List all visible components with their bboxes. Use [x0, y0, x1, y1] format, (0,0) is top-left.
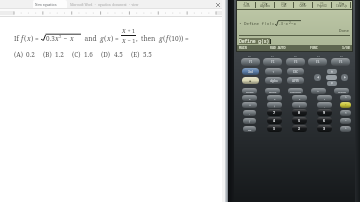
button[interactable]: F1	[241, 58, 260, 66]
button[interactable]: F4▼ Other	[294, 2, 312, 8]
staticText: x	[122, 26, 126, 35]
staticText: ▼	[331, 82, 333, 85]
staticText: F4▼ Other	[299, 2, 307, 8]
button[interactable]: F6▼ Clean Up	[332, 2, 350, 8]
staticText: g	[159, 34, 163, 43]
staticText: ∞	[249, 104, 251, 107]
staticText: 2	[289, 21, 291, 25]
button[interactable]: −	[340, 118, 351, 124]
button[interactable]: 5	[292, 117, 307, 124]
button[interactable]: ^	[340, 95, 351, 101]
button[interactable]: (	[267, 102, 282, 108]
button[interactable]: Right	[341, 74, 348, 81]
button[interactable]: F2	[263, 58, 282, 66]
staticText: 2	[298, 126, 301, 131]
button[interactable]: x	[242, 95, 257, 101]
button[interactable]: (B)	[43, 50, 64, 59]
button[interactable]: ESC	[287, 68, 304, 75]
staticText: (	[163, 34, 166, 43]
staticText: ▲	[331, 70, 333, 73]
button[interactable]: Down	[327, 81, 337, 86]
staticText: F7	[271, 54, 274, 57]
button[interactable]: F5	[331, 58, 350, 66]
button[interactable]: Left	[314, 74, 321, 81]
staticText: −	[345, 119, 347, 123]
button[interactable]: ,	[317, 102, 332, 108]
staticText: RAD AUTO	[270, 46, 286, 50]
button[interactable]: 1	[267, 125, 282, 132]
button[interactable]: HOME	[242, 88, 257, 94]
staticText: 6	[323, 118, 326, 123]
button[interactable]: F1▼ Tools	[238, 2, 255, 8]
button[interactable]: 2	[292, 125, 307, 132]
button[interactable]: F5 PrgmIO	[313, 2, 331, 8]
staticText: ) =	[111, 34, 121, 43]
staticText: F2	[340, 54, 343, 57]
button[interactable]: alpha	[265, 77, 282, 84]
button[interactable]: (C)	[72, 50, 93, 59]
button[interactable]: |	[243, 110, 256, 116]
staticText: 1.2	[55, 50, 64, 59]
button[interactable]: +	[340, 126, 351, 132]
staticText: F5	[339, 60, 343, 64]
staticText: ◆	[249, 79, 252, 82]
staticText: ◀	[317, 76, 319, 79]
staticText: 8	[298, 110, 301, 115]
button[interactable]: ∞	[242, 102, 257, 108]
staticText: sin	[248, 128, 252, 131]
staticText: F3	[294, 60, 298, 64]
button[interactable]: ←	[311, 88, 326, 94]
staticText: F5 PrgmIO	[317, 2, 327, 8]
button[interactable]: 8	[292, 109, 307, 116]
button[interactable]: 9	[317, 109, 332, 116]
staticText: F1	[317, 54, 320, 57]
button[interactable]: CLEAR	[334, 88, 349, 94]
button[interactable]: ×	[340, 110, 351, 116]
button[interactable]: )	[292, 102, 307, 108]
staticText: ^	[345, 96, 347, 100]
button[interactable]: sin	[243, 126, 256, 132]
staticText: 3	[323, 126, 326, 131]
button[interactable]: New equation	[33, 0, 67, 9]
button[interactable]: F2▼ Algebra	[256, 2, 274, 8]
button[interactable]: F3▼ Calc	[275, 2, 293, 8]
button[interactable]: (D)	[101, 50, 123, 59]
staticText: F2▼ Algebra	[260, 2, 270, 8]
button[interactable]: 3	[317, 125, 332, 132]
button[interactable]: t	[317, 95, 332, 101]
staticText: x	[107, 34, 111, 43]
staticText: Microsoft Word - equation document - vie…	[70, 3, 139, 7]
button[interactable]: Close	[215, 2, 221, 8]
staticText: + 1	[126, 27, 136, 35]
button[interactable]: Center	[326, 75, 337, 80]
staticText: (C)	[72, 50, 81, 59]
button[interactable]: ∫	[243, 118, 256, 124]
staticText: 4	[273, 118, 276, 123]
button[interactable]: F3	[286, 58, 305, 66]
staticText: Done	[339, 28, 350, 34]
button[interactable]: CATALOG	[288, 88, 303, 94]
button[interactable]: 4	[267, 117, 282, 124]
button[interactable]: 2nd	[242, 68, 259, 75]
button[interactable]: APPS	[287, 77, 304, 84]
button[interactable]: ↑	[265, 68, 282, 75]
button[interactable]: ◆	[242, 77, 259, 84]
button[interactable]: Up	[327, 69, 337, 74]
button[interactable]: 7	[267, 109, 282, 116]
button[interactable]: 6	[317, 117, 332, 124]
staticText: (B)	[43, 50, 52, 59]
button[interactable]: F4	[308, 58, 327, 66]
button[interactable]: MODE	[265, 88, 280, 94]
button[interactable]: (A)	[14, 50, 35, 59]
button[interactable]: y	[267, 95, 282, 101]
staticText: ÷	[345, 103, 347, 107]
staticText: (D)	[101, 50, 111, 59]
button[interactable]: ÷	[340, 102, 351, 108]
button[interactable]: (E)	[131, 50, 152, 59]
staticText: F6▼ Clean Up	[336, 2, 347, 8]
button[interactable]: z	[292, 95, 307, 101]
staticText: • Define f(x)=	[239, 21, 275, 27]
staticText: FUNC	[310, 46, 318, 50]
staticText: −	[62, 34, 70, 43]
staticText: 1	[273, 126, 276, 131]
